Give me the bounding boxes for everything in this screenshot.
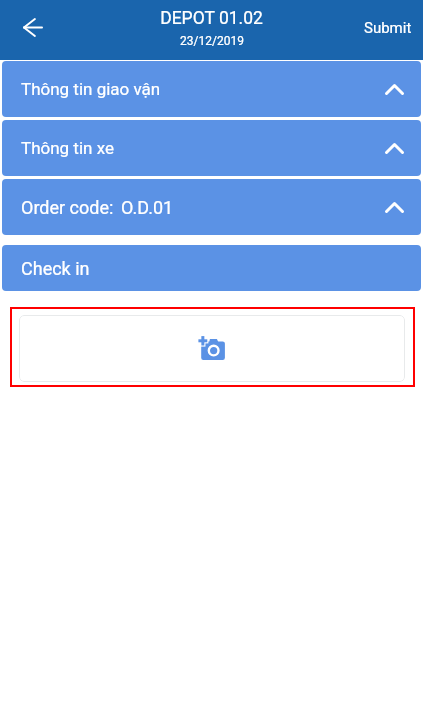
staticText: Order code:	[21, 197, 114, 218]
button[interactable]: Back	[13, 7, 53, 47]
staticText: Submit	[364, 19, 412, 37]
staticText: 23/12/2019	[180, 34, 244, 48]
staticText: Check in	[21, 258, 90, 279]
button[interactable]: Check in	[2, 245, 421, 291]
staticText: Thông tin xe	[21, 138, 114, 158]
staticText: Thông tin giao vận	[21, 79, 161, 99]
staticText: O.D.01	[121, 197, 174, 218]
button[interactable]: Order code:	[2, 179, 421, 235]
button[interactable]: Thông tin giao vận	[2, 61, 421, 117]
staticText: DEPOT 01.02	[160, 8, 263, 29]
button[interactable]: Thông tin xe	[2, 120, 421, 176]
button[interactable]: Add photo	[19, 315, 405, 382]
button[interactable]: Submit	[353, 9, 423, 47]
